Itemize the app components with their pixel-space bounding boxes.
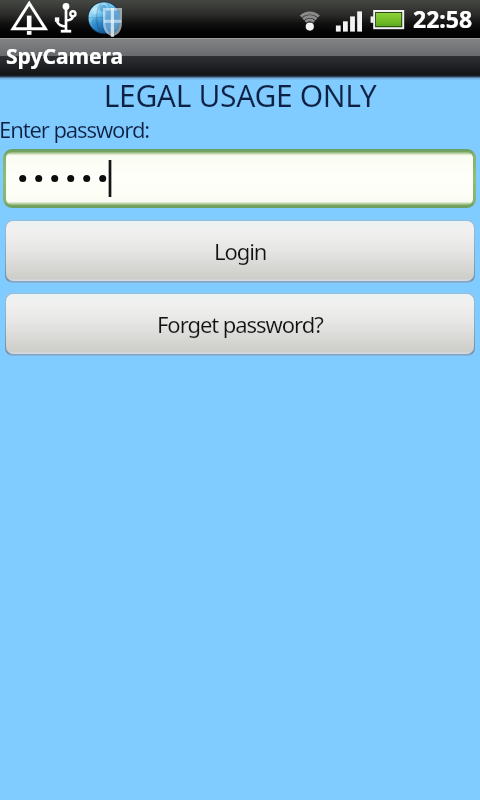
staticText: Login — [214, 236, 267, 266]
staticText: SpyCamera — [6, 42, 124, 71]
staticText: Enter password: — [0, 114, 150, 144]
button[interactable]: Forget password? — [5, 293, 475, 356]
button[interactable]: Login — [5, 220, 475, 283]
staticText: 22:58 — [413, 3, 473, 34]
button[interactable]: Password field — [6, 152, 473, 205]
staticText: Forget password? — [157, 309, 323, 339]
staticText: LEGAL USAGE ONLY — [0, 75, 480, 116]
